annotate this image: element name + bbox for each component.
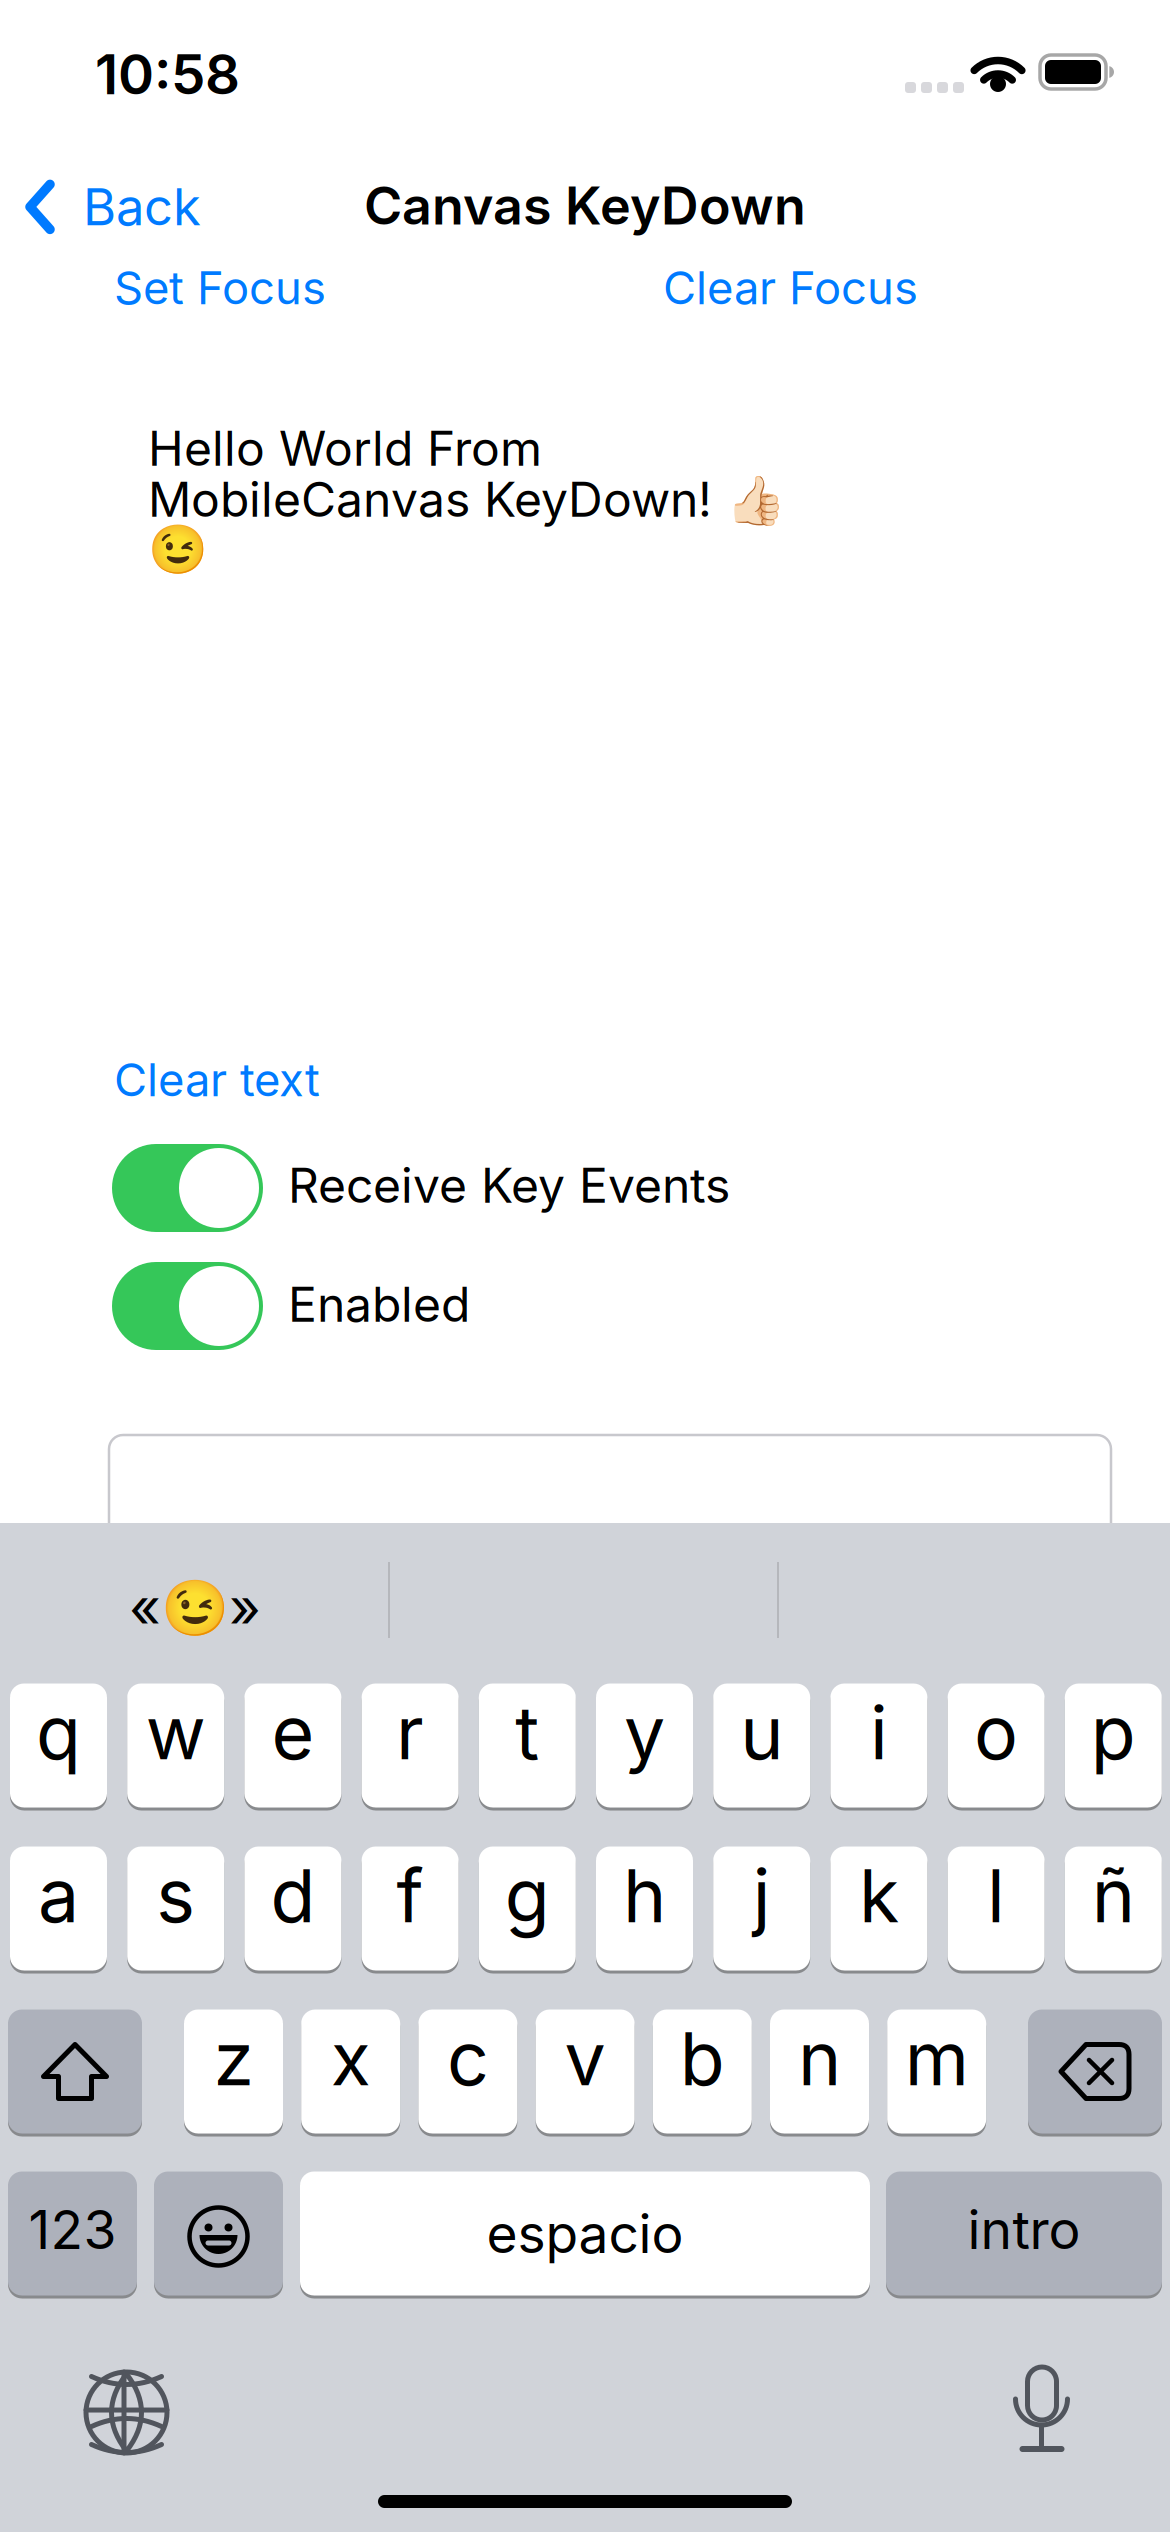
staticText: d — [270, 1852, 315, 1939]
staticText: s — [156, 1852, 195, 1939]
button[interactable]: i — [830, 1682, 927, 1809]
staticText: e — [271, 1689, 314, 1776]
staticText: 😉 — [148, 522, 208, 577]
staticText: Set Focus — [114, 261, 326, 314]
button[interactable]: Suggestion «😉» — [0, 1575, 390, 1640]
button[interactable]: w — [127, 1682, 224, 1809]
staticText: Receive Key Events — [288, 1157, 730, 1214]
staticText: m — [905, 2015, 969, 2102]
staticText: k — [859, 1852, 899, 1939]
button[interactable]: z — [184, 2008, 283, 2135]
staticText: Clear Focus — [663, 261, 918, 314]
button[interactable]: d — [244, 1845, 341, 1972]
button[interactable]: Clear Focus — [663, 261, 918, 314]
button[interactable]: v — [536, 2008, 635, 2135]
button[interactable]: Dictation — [1014, 2367, 1070, 2455]
button[interactable]: Back — [27, 177, 201, 237]
button[interactable]: intro — [886, 2170, 1162, 2297]
button[interactable]: n — [770, 2008, 869, 2135]
staticText: intro — [967, 2198, 1080, 2261]
staticText: b — [680, 2015, 725, 2102]
staticText: q — [36, 1689, 81, 1776]
staticText: Enabled — [288, 1276, 470, 1333]
button[interactable]: Clear text — [114, 1053, 320, 1106]
staticText: a — [38, 1852, 79, 1939]
staticText: o — [974, 1689, 1018, 1776]
button[interactable]: Next keyboard — [86, 2372, 167, 2453]
button[interactable]: Set Focus — [114, 261, 326, 314]
staticText: w — [146, 1689, 206, 1776]
button[interactable]: a — [10, 1845, 107, 1972]
staticText: j — [753, 1852, 771, 1939]
staticText: t — [515, 1689, 539, 1776]
button[interactable]: r — [362, 1682, 459, 1809]
button[interactable]: e — [244, 1682, 341, 1809]
button[interactable]: j — [713, 1845, 810, 1972]
staticText: n — [798, 2015, 841, 2102]
staticText: Clear text — [114, 1053, 320, 1106]
staticText: Canvas KeyDown — [364, 175, 806, 236]
staticText: p — [1091, 1689, 1136, 1776]
button[interactable]: s — [127, 1845, 224, 1972]
button[interactable]: y — [596, 1682, 693, 1809]
button[interactable]: espacio — [300, 2170, 870, 2297]
staticText: 123 — [28, 2198, 116, 2261]
staticText: Hello World From — [148, 420, 542, 477]
staticText: f — [397, 1852, 424, 1939]
button[interactable]: o — [948, 1682, 1045, 1809]
staticText: x — [331, 2015, 371, 2102]
button[interactable]: h — [596, 1845, 693, 1972]
staticText: MobileCanvas KeyDown! 👍🏻 — [148, 471, 786, 528]
staticText: espacio — [486, 2202, 683, 2265]
button[interactable]: p — [1065, 1682, 1162, 1809]
staticText: l — [987, 1852, 1005, 1939]
button[interactable]: ñ — [1065, 1845, 1162, 1972]
button[interactable]: f — [362, 1845, 459, 1972]
staticText: h — [623, 1852, 666, 1939]
staticText: «😉» — [129, 1575, 261, 1640]
button[interactable]: l — [948, 1845, 1045, 1972]
staticText: r — [396, 1689, 424, 1776]
button[interactable]: Text field — [109, 1435, 1111, 1545]
button[interactable]: t — [479, 1682, 576, 1809]
staticText: Back — [83, 177, 201, 237]
button[interactable]: q — [10, 1682, 107, 1809]
button[interactable]: b — [653, 2008, 752, 2135]
button[interactable]: x — [301, 2008, 400, 2135]
staticText: u — [740, 1689, 783, 1776]
button[interactable]: c — [418, 2008, 517, 2135]
button[interactable]: Receive Key Events — [112, 1144, 263, 1232]
staticText: g — [505, 1852, 550, 1939]
staticText: z — [213, 2015, 253, 2102]
staticText: ñ — [1092, 1852, 1135, 1939]
button[interactable]: k — [830, 1845, 927, 1972]
button[interactable]: Shift — [8, 2008, 142, 2135]
button[interactable]: 123 — [8, 2170, 137, 2297]
staticText: y — [624, 1689, 665, 1776]
button[interactable]: m — [887, 2008, 986, 2135]
button[interactable]: Delete — [1028, 2008, 1162, 2135]
button[interactable]: Enabled — [112, 1262, 263, 1350]
button[interactable]: g — [479, 1845, 576, 1972]
staticText: i — [870, 1689, 888, 1776]
staticText: 10:58 — [95, 42, 240, 106]
staticText: c — [447, 2015, 489, 2102]
button[interactable]: u — [713, 1682, 810, 1809]
button[interactable]: Emoji — [154, 2170, 283, 2297]
staticText: v — [565, 2015, 606, 2102]
